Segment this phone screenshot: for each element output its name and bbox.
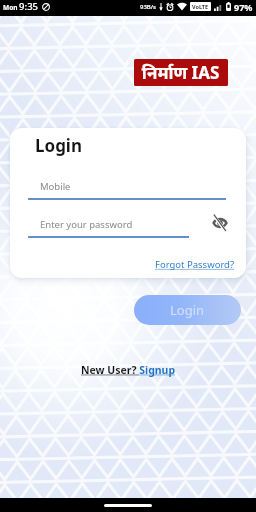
button[interactable]: New User? Signup [81,363,176,377]
staticText: Mon 9:35 [3,0,38,13]
staticText: Forgot Password? [155,258,235,271]
staticText: Enter your password [40,218,133,231]
button[interactable]: Login [134,295,241,325]
button[interactable]: Show password [189,210,236,234]
staticText: Login [35,134,83,157]
staticText: New User? Signup [81,363,176,377]
staticText: VoLTE [192,3,209,10]
staticText: 93B/s [140,3,157,11]
staticText: 97% [234,1,253,13]
staticText: निर्माण IAS [142,61,220,84]
button[interactable]: Forgot Password? [155,258,235,271]
staticText: Mobile [40,180,71,193]
staticText: Login [170,301,205,319]
